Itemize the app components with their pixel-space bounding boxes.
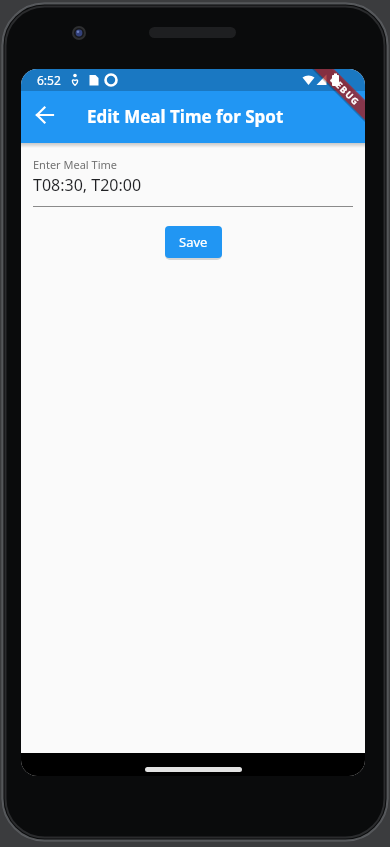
staticText: Edit Meal Time for Spot [87, 105, 284, 128]
staticText: DEBUG [328, 73, 363, 108]
button[interactable] [28, 98, 62, 132]
button[interactable]: Save [165, 226, 222, 258]
staticText: Save [179, 233, 208, 251]
staticText: Enter Meal Time [33, 157, 117, 172]
staticText: 6:52 [37, 72, 61, 88]
staticText: T08:30, T20:00 [33, 174, 142, 196]
